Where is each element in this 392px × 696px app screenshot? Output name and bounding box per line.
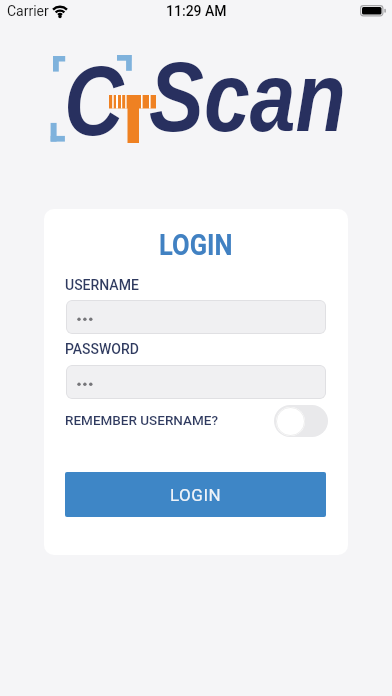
staticText: C — [64, 46, 124, 155]
staticText: LOGIN — [159, 228, 233, 262]
staticText: Carrier — [7, 3, 49, 19]
button[interactable] — [66, 365, 326, 399]
staticText: REMEMBER USERNAME? — [65, 412, 219, 428]
staticText: PASSWORD — [65, 341, 139, 357]
staticText: LOGIN — [170, 485, 222, 505]
button[interactable] — [66, 300, 326, 334]
staticText: 11:29 AM — [166, 3, 227, 19]
staticText: Scan — [149, 42, 346, 151]
button[interactable] — [274, 405, 328, 437]
button[interactable]: LOGIN — [65, 472, 326, 517]
staticText: USERNAME — [65, 277, 139, 293]
